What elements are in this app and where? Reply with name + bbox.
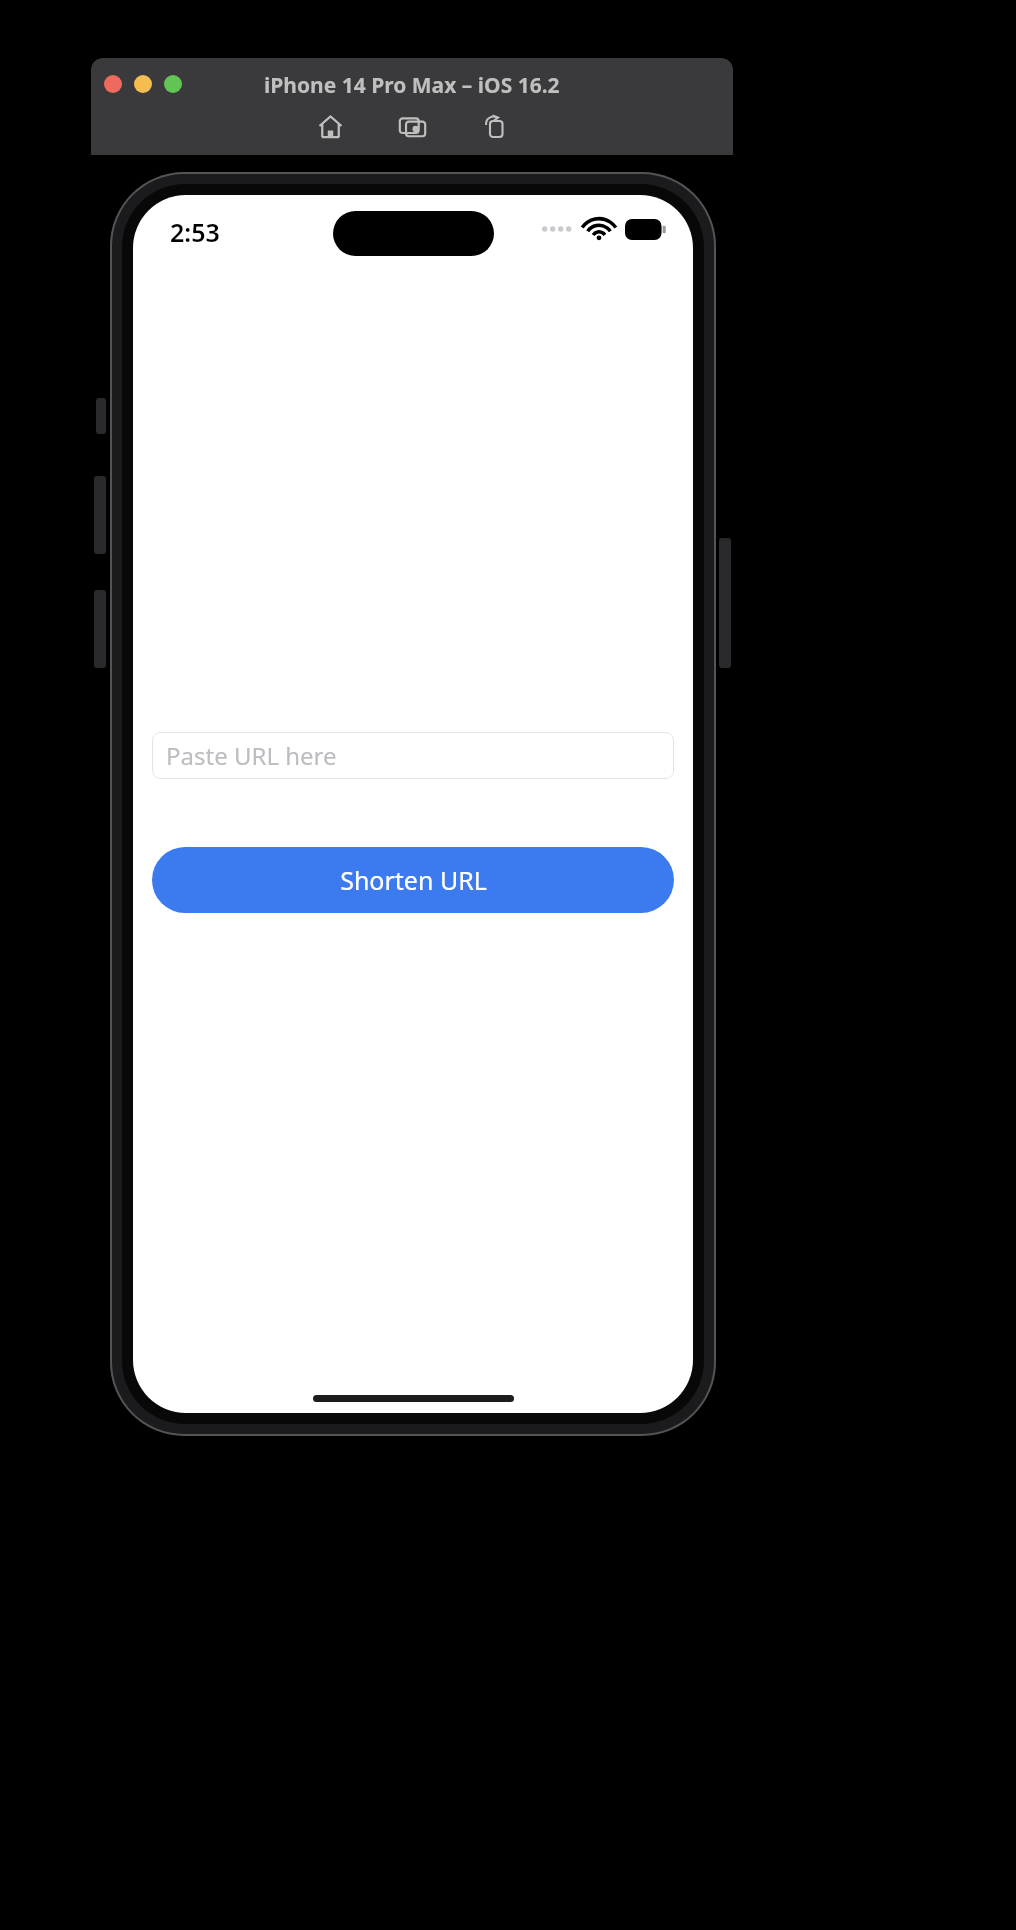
button[interactable]: Home [312,108,348,144]
button[interactable]: Maximize window [164,75,182,93]
button[interactable]: Minimize window [134,75,152,93]
button[interactable]: Record screen [476,108,512,144]
button[interactable]: Screenshot [394,108,430,144]
staticText: Paste URL here [166,739,337,772]
staticText: iPhone 14 Pro Max – iOS 16.2 [264,71,560,100]
staticText: 2:53 [170,215,220,249]
button[interactable]: Shorten URL [152,847,674,913]
staticText: Shorten URL [340,863,487,897]
button[interactable]: Paste URL here [152,732,674,779]
button[interactable]: Close window [104,75,122,93]
